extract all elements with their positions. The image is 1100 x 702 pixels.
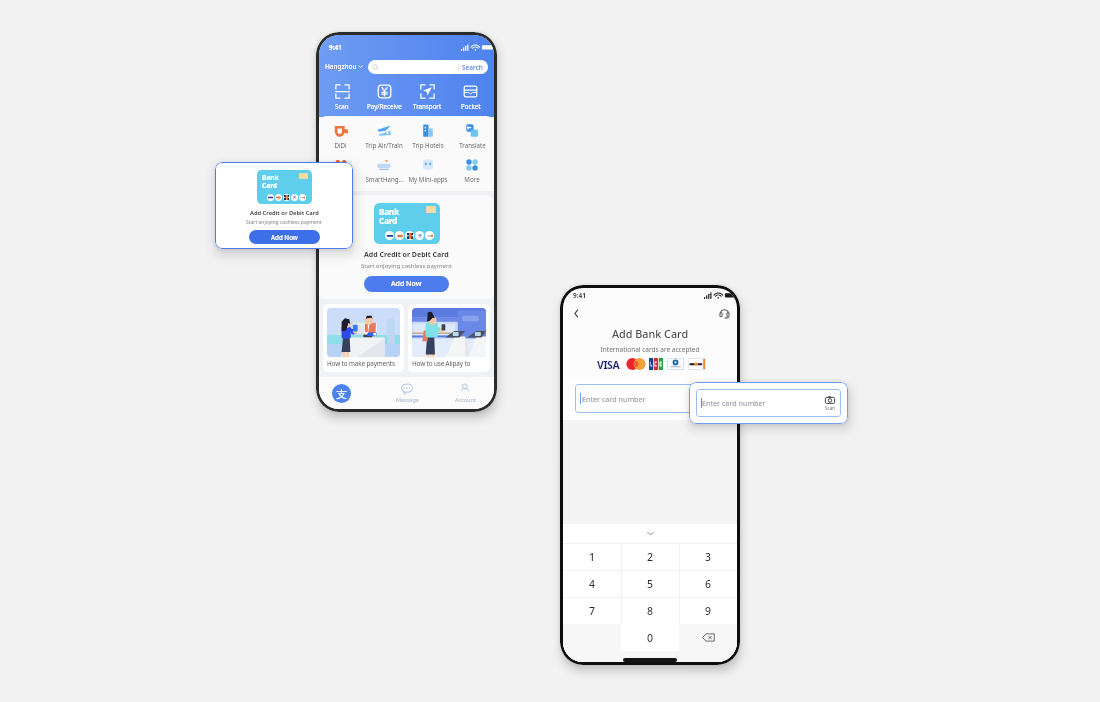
button[interactable]: 7 [563,597,621,624]
staticText: How to make payments [327,359,395,368]
button[interactable]: How to use Alipay to [408,304,490,372]
button[interactable]: Hide keyboard [563,524,737,543]
staticText: Transport [413,102,442,110]
button[interactable]: Trip Air/Train [362,123,406,155]
button[interactable]: How to make payments [323,304,404,372]
button[interactable] [563,624,621,651]
staticText: My Mini-apps [408,175,448,183]
staticText: Enter card number [582,394,646,404]
button[interactable]: Pay/Receive [363,83,406,116]
staticText: Add Bank Card [563,326,737,341]
button[interactable]: Hangzhou [325,62,363,71]
button[interactable]: Trip Hotels [406,123,450,155]
button[interactable]: 1 [563,543,621,570]
button[interactable]: Account [436,377,494,409]
staticText: 支 [336,387,347,401]
staticText: 4 [589,577,596,591]
staticText: Add Now [391,279,422,289]
button[interactable]: Transport [406,83,449,116]
staticText: 8 [647,604,654,618]
staticText: 7 [589,604,596,618]
button[interactable]: 3 [679,543,737,570]
staticText: How to use Alipay to [412,359,471,368]
staticText: Search [462,63,483,72]
staticText: 5 [647,577,654,591]
staticText: Hangzhou [325,62,357,71]
staticText: Translate [459,141,486,149]
staticText: International cards are accepted [563,345,737,354]
staticText: Trip Hotels [412,141,444,149]
button[interactable]: Customer service [716,305,732,321]
button[interactable]: Search [368,60,488,74]
staticText: Scan [335,102,349,110]
button[interactable]: SmartHang... [362,157,406,189]
staticText: 0 [647,631,654,645]
staticText: Account [455,396,476,403]
staticText: Pay/Receive [367,102,402,110]
button[interactable]: Back [568,305,584,321]
staticText: 9:41 [329,43,342,52]
staticText: Add Credit or Debit Card [364,250,449,260]
button[interactable]: Rate [319,157,362,189]
staticText: 2 [647,550,654,564]
staticText: Add Credit or Debit Card [250,209,319,217]
button[interactable]: 8 [621,597,679,624]
button[interactable]: Message [378,377,436,409]
button[interactable]: 0 [621,624,679,651]
button[interactable]: 6 [679,570,737,597]
staticText: More [464,175,480,183]
staticText: Bank Card [379,206,400,227]
staticText: Enter card number [702,398,766,408]
button[interactable]: Enter card number [575,384,725,413]
staticText: Message [396,396,419,403]
staticText: Pocket [461,102,481,110]
button[interactable]: 2 [621,543,679,570]
button[interactable]: Scan [321,83,363,116]
staticText: 6 [705,577,712,591]
button[interactable]: 5 [621,570,679,597]
button[interactable]: Add Now [249,230,320,244]
staticText: 9:41 [573,291,586,300]
staticText: 1 [589,550,596,564]
staticText: Scan [825,405,835,411]
button[interactable]: Enter card number [696,389,841,417]
button[interactable]: Pocket [449,83,492,116]
button[interactable]: Delete [679,624,737,651]
staticText: DiDi [334,141,347,149]
staticText: Bank Card [262,173,279,190]
button[interactable]: 9 [679,597,737,624]
button[interactable]: Alipay Home [319,377,378,409]
staticText: VISA [597,358,620,370]
staticText: 9 [705,604,712,618]
button[interactable]: Add Now [364,276,449,292]
staticText: 3 [705,550,712,564]
button[interactable]: More [450,157,494,189]
staticText: Trip Air/Train [365,141,403,149]
button[interactable]: Translate [450,123,494,155]
staticText: Add Now [271,233,298,241]
button[interactable]: My Mini-apps [406,157,450,189]
staticText: Start enjoying cashless payment [246,219,322,226]
button[interactable]: DiDi [319,123,362,155]
staticText: Start enjoying cashless payment [361,262,452,270]
staticText: SmartHang... [365,175,404,183]
button[interactable]: 4 [563,570,621,597]
